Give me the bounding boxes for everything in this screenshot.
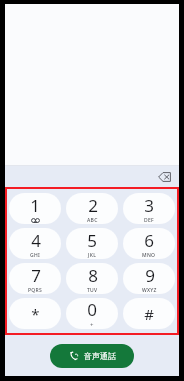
- staticText: 0: [87, 298, 97, 321]
- staticText: 4: [31, 229, 41, 252]
- staticText: 1: [30, 194, 40, 217]
- button[interactable]: 音声通話: [50, 344, 134, 368]
- staticText: 7: [31, 264, 41, 287]
- staticText: GHI: [30, 252, 41, 259]
- staticText: DEF: [144, 217, 154, 224]
- button[interactable]: 0: [66, 298, 118, 329]
- staticText: #: [144, 304, 154, 324]
- button[interactable]: 9: [123, 263, 175, 294]
- staticText: 5: [87, 229, 97, 252]
- staticText: MNO: [142, 252, 156, 259]
- staticText: ABC: [87, 217, 98, 224]
- staticText: 8: [88, 264, 98, 287]
- staticText: 6: [144, 229, 154, 252]
- staticText: +: [90, 321, 94, 329]
- staticText: TUV: [87, 287, 98, 294]
- button[interactable]: #: [123, 298, 175, 329]
- button[interactable]: 6: [123, 228, 175, 259]
- button[interactable]: Backspace: [156, 168, 173, 185]
- button[interactable]: 4: [9, 228, 61, 259]
- staticText: 9: [145, 264, 155, 287]
- button[interactable]: 5: [66, 228, 118, 259]
- button[interactable]: 8: [66, 263, 118, 294]
- staticText: 2: [88, 194, 98, 217]
- staticText: JKL: [88, 252, 97, 259]
- button[interactable]: 3: [123, 193, 175, 224]
- button[interactable]: 7: [9, 263, 61, 294]
- button[interactable]: *: [9, 298, 61, 329]
- staticText: 音声通話: [84, 351, 116, 361]
- staticText: WXYZ: [142, 287, 157, 294]
- button[interactable]: 2: [66, 193, 118, 224]
- button[interactable]: 1: [9, 193, 61, 224]
- staticText: 3: [144, 194, 154, 217]
- staticText: *: [31, 304, 40, 324]
- staticText: PQRS: [28, 287, 43, 294]
